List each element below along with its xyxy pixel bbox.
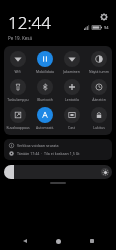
staticText: Jakaminen (63, 69, 80, 74)
button[interactable]: Bluetooth (31, 78, 58, 103)
staticText: Lukitus (93, 125, 105, 130)
staticText: Pe 19. Kesä (8, 35, 32, 41)
button[interactable]: Back (16, 232, 34, 250)
button[interactable]: Settings (98, 11, 109, 22)
button[interactable]: Cast (58, 106, 85, 131)
staticText: 94 (104, 25, 109, 30)
staticText: Mobiilidata (36, 69, 54, 74)
staticText: Bluetooth (37, 97, 53, 102)
staticText: Cast (68, 125, 75, 130)
staticText: Taskulamppu (7, 97, 29, 102)
button[interactable]: Jakaminen (58, 50, 85, 75)
button[interactable]: Taskulamppu (4, 78, 31, 103)
button[interactable]: Kuvakaappaus (4, 106, 31, 131)
staticText: Wifi (14, 69, 21, 74)
button[interactable]: Home (49, 232, 67, 250)
button[interactable]: Lukitus (85, 106, 112, 131)
button[interactable]: Verkkoa voidaan seurata (4, 139, 112, 160)
staticText: Verkkoa voidaan seurata (17, 143, 59, 148)
button[interactable]: Brightness (4, 165, 112, 179)
staticText: Automaatt. (36, 125, 54, 130)
button[interactable]: Mobiilidata (31, 50, 58, 75)
button[interactable]: Lentotila (58, 78, 85, 103)
staticText: Kuvakaappaus (6, 125, 30, 130)
button[interactable]: Wifi (4, 50, 31, 75)
staticText: Tänään 17:44 · Tila ei koskaan 1,5 Gt (17, 151, 80, 156)
staticText: 12:44 (8, 11, 51, 34)
button[interactable]: Näytä tumm (85, 50, 112, 75)
staticText: Äänetön (92, 97, 106, 102)
button[interactable]: Recents (83, 232, 101, 250)
button[interactable]: Äänetön (85, 78, 112, 103)
staticText: Lentotila (65, 97, 79, 102)
staticText: Näytä tumm (89, 69, 109, 74)
button[interactable]: Automaatt. (31, 106, 58, 131)
